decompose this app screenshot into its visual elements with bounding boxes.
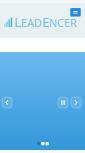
button[interactable]: Slide 3	[46, 142, 49, 145]
button[interactable]: Slide 1	[37, 142, 40, 145]
button[interactable]: Menu	[68, 6, 82, 19]
button[interactable]: Slide 2	[41, 142, 44, 145]
button[interactable]: Previous slide	[2, 97, 12, 108]
button[interactable]: Next slide	[71, 97, 81, 108]
button[interactable]: LeadEncer home	[4, 16, 80, 28]
button[interactable]: Pause slideshow	[58, 97, 68, 108]
staticText: LEADENCER	[14, 13, 77, 31]
